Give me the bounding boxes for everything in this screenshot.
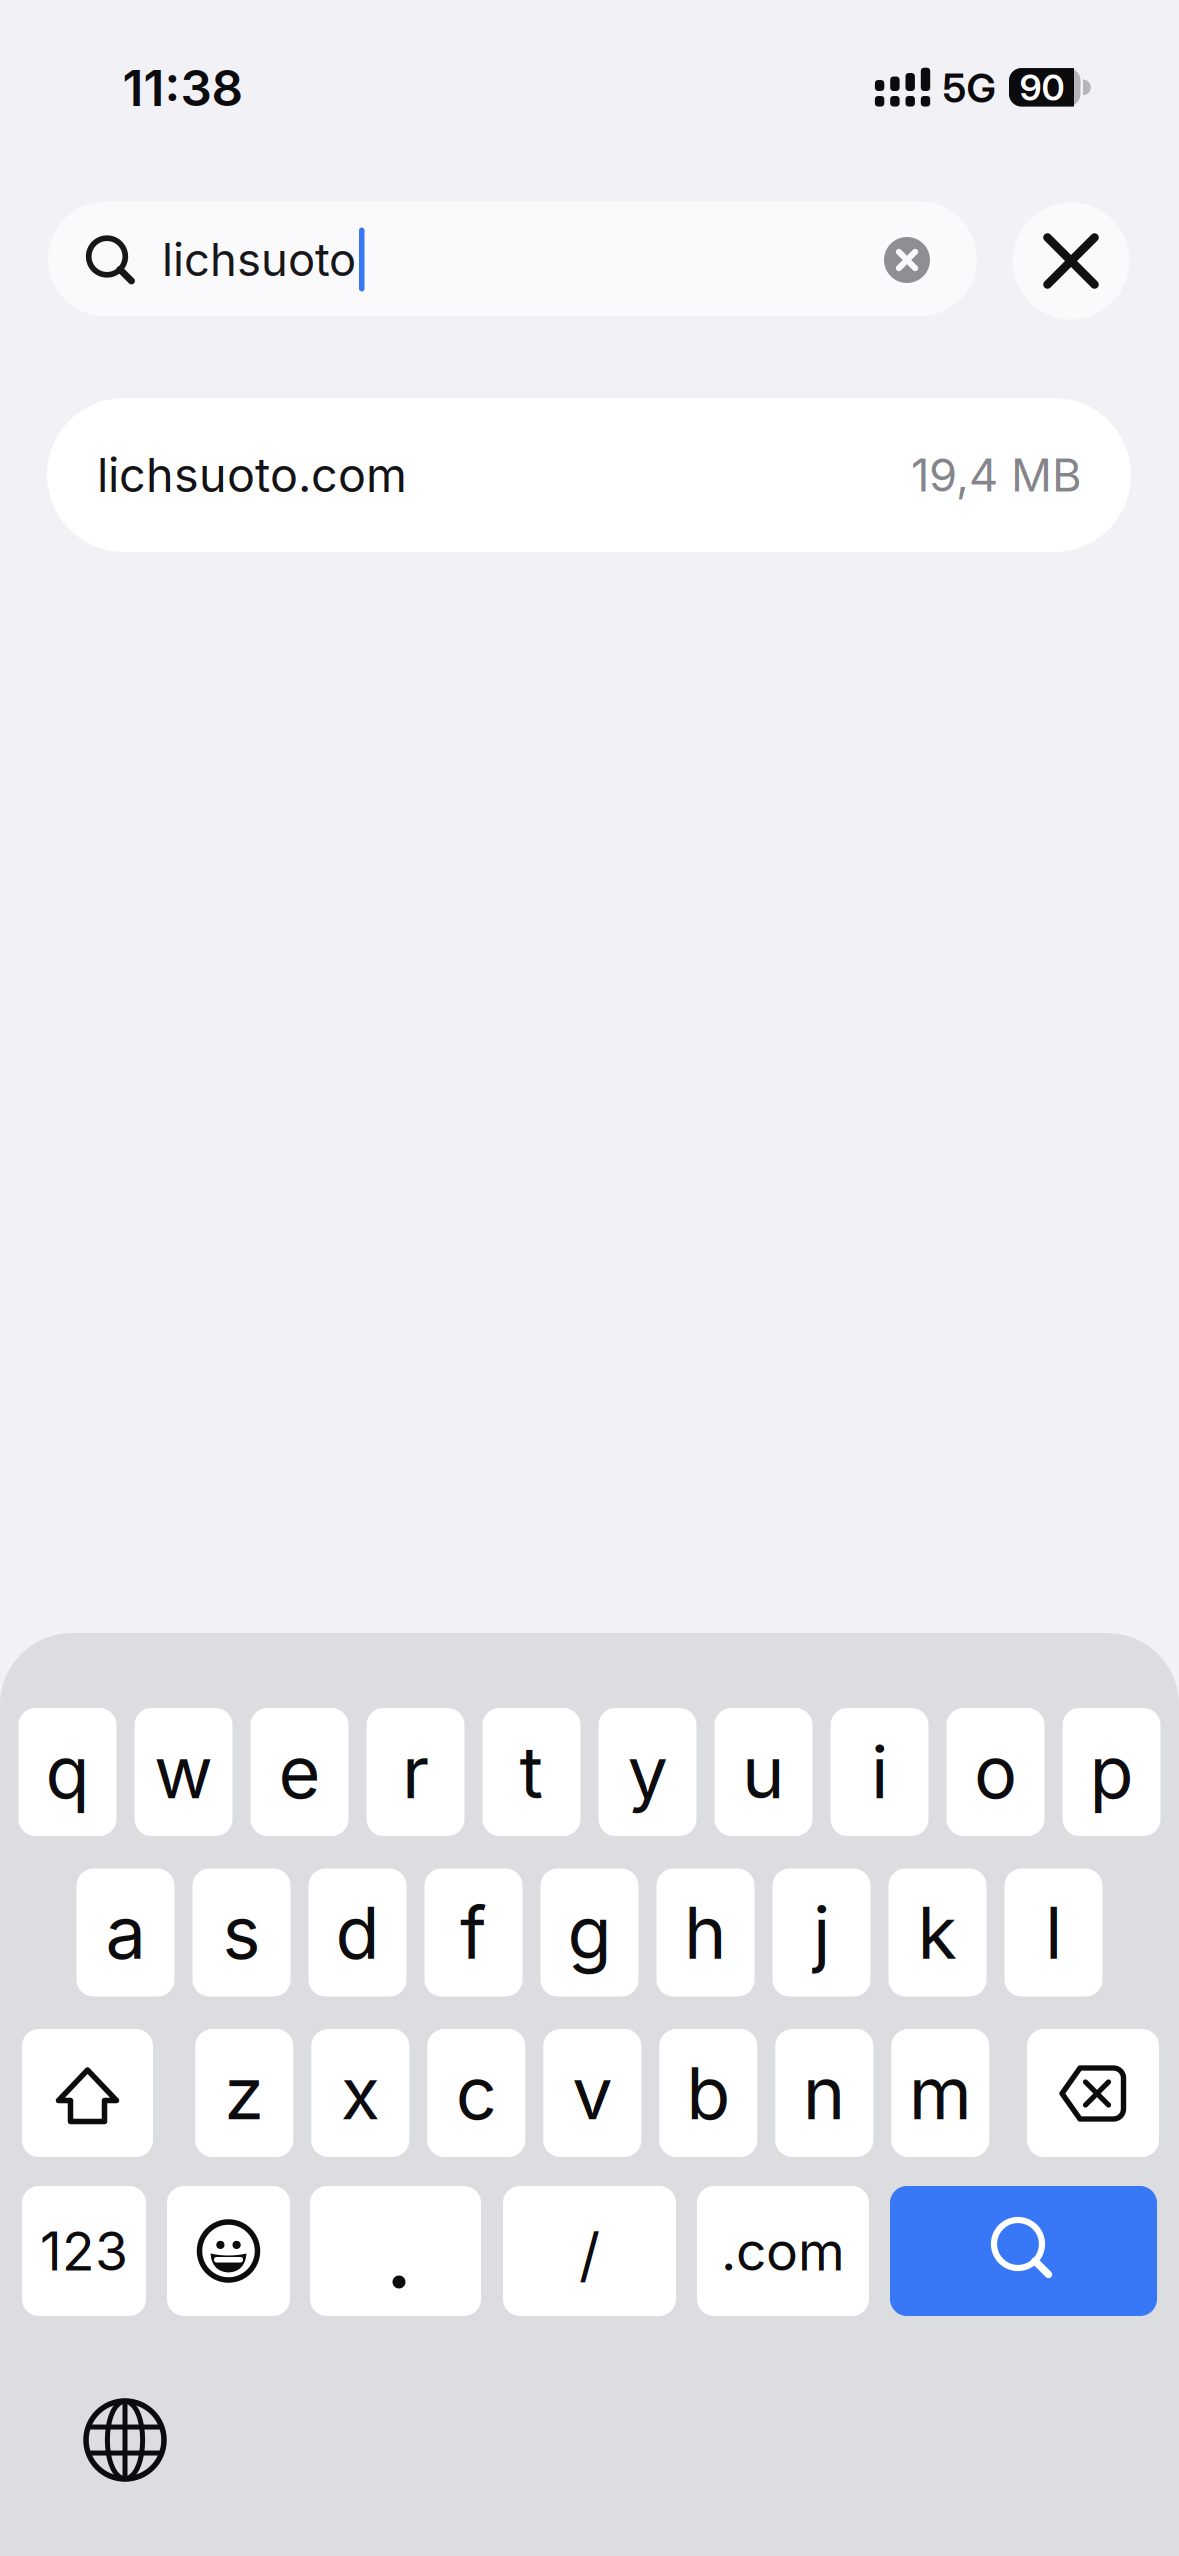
button[interactable]: p (1062, 1708, 1160, 1836)
button[interactable]: l (1004, 1868, 1102, 1996)
staticText: k (917, 1890, 957, 1975)
button[interactable]: Shift (22, 2029, 153, 2157)
button[interactable]: w (134, 1708, 232, 1836)
staticText: a (105, 1890, 145, 1975)
staticText: r (402, 1729, 429, 1814)
button[interactable]: .com (697, 2186, 869, 2316)
button[interactable]: q (18, 1708, 116, 1836)
button[interactable]: d (308, 1868, 406, 1996)
button[interactable]: o (946, 1708, 1044, 1836)
button[interactable]: i (830, 1708, 928, 1836)
staticText: i (871, 1729, 888, 1814)
staticText: m (909, 2050, 972, 2135)
button[interactable]: 123 (22, 2186, 146, 2316)
button[interactable]: lichsuoto.com (47, 398, 1131, 552)
staticText: q (45, 1729, 89, 1814)
staticText: lichsuoto.com (97, 447, 407, 503)
staticText: lichsuoto (162, 233, 356, 286)
staticText: .com (721, 2219, 845, 2282)
staticText: e (278, 1729, 320, 1814)
button[interactable]: c (427, 2029, 525, 2157)
button[interactable]: k (888, 1868, 986, 1996)
button[interactable]: a (76, 1868, 174, 1996)
button[interactable]: x (311, 2029, 409, 2157)
staticText: 11:38 (122, 59, 243, 117)
button[interactable]: m (891, 2029, 989, 2157)
staticText: 123 (40, 2219, 128, 2282)
button[interactable]: Search lichsuoto (48, 201, 977, 316)
staticText: b (686, 2050, 730, 2135)
button[interactable]: Emoji (167, 2186, 290, 2316)
button[interactable]: n (775, 2029, 873, 2157)
button[interactable]: j (772, 1868, 870, 1996)
staticText: f (460, 1890, 487, 1975)
staticText: g (567, 1890, 611, 1975)
staticText: n (803, 2050, 846, 2135)
button[interactable]: b (659, 2029, 757, 2157)
button[interactable]: Search (890, 2186, 1157, 2316)
staticText: 90 (1019, 66, 1064, 109)
staticText: z (224, 2050, 264, 2135)
staticText: x (341, 2050, 380, 2135)
button[interactable]: g (540, 1868, 638, 1996)
button[interactable]: y (598, 1708, 696, 1836)
staticText: h (684, 1890, 727, 1975)
button[interactable]: s (192, 1868, 290, 1996)
staticText: 5G (942, 64, 995, 112)
staticText: o (974, 1729, 1017, 1814)
staticText: d (335, 1890, 379, 1975)
staticText: / (579, 2220, 600, 2290)
button[interactable]: Period (310, 2186, 481, 2316)
button[interactable]: r (366, 1708, 464, 1836)
staticText: j (813, 1890, 830, 1975)
button[interactable]: / (503, 2186, 676, 2316)
button[interactable]: Clear text (884, 237, 930, 283)
button[interactable]: Delete (1027, 2029, 1159, 2157)
button[interactable]: e (250, 1708, 348, 1836)
staticText: v (572, 2050, 612, 2135)
staticText: y (627, 1729, 667, 1814)
button[interactable]: h (656, 1868, 754, 1996)
button[interactable]: t (482, 1708, 580, 1836)
staticText: c (456, 2050, 497, 2135)
staticText: l (1045, 1890, 1062, 1975)
button[interactable]: Close (1012, 202, 1129, 319)
staticText: p (1089, 1729, 1133, 1814)
button[interactable]: z (195, 2029, 293, 2157)
button[interactable]: Next keyboard (70, 2385, 180, 2495)
button[interactable]: f (424, 1868, 522, 1996)
staticText: t (519, 1729, 543, 1814)
button[interactable]: v (543, 2029, 641, 2157)
staticText: w (154, 1729, 213, 1814)
button[interactable]: u (714, 1708, 812, 1836)
staticText: s (222, 1890, 260, 1975)
staticText: 19,4 MB (911, 448, 1082, 502)
staticText: u (742, 1729, 785, 1814)
